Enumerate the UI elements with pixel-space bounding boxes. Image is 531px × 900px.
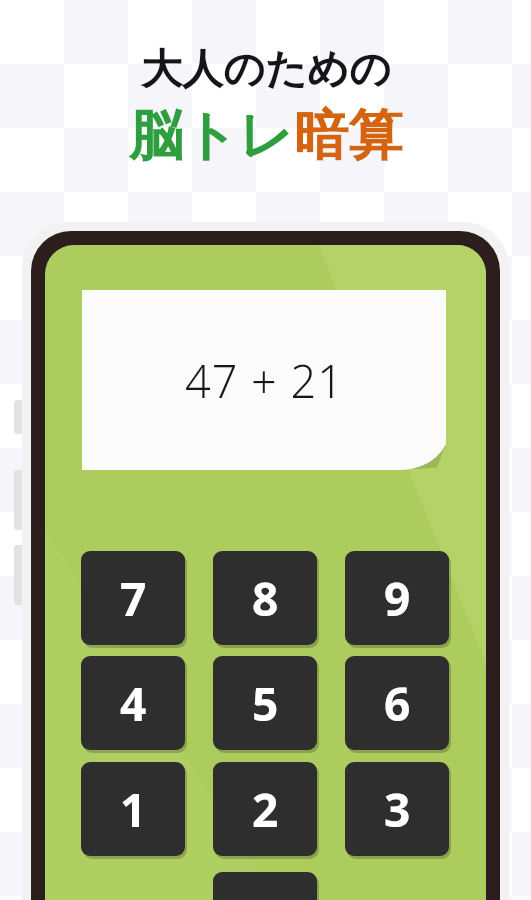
staticText: 2 bbox=[252, 778, 279, 841]
staticText: 1 bbox=[120, 778, 147, 841]
button[interactable]: 9 bbox=[345, 551, 449, 645]
staticText: 暗算 bbox=[294, 102, 402, 170]
staticText: 7 bbox=[120, 567, 147, 630]
staticText: 大人のための bbox=[141, 44, 391, 96]
staticText: 47 + 21 bbox=[185, 350, 344, 411]
staticText: 4 bbox=[120, 672, 147, 735]
button[interactable]: 8 bbox=[213, 551, 317, 645]
button[interactable]: 4 bbox=[81, 656, 185, 750]
staticText: 5 bbox=[252, 672, 279, 735]
button[interactable]: 3 bbox=[345, 762, 449, 856]
staticText: 3 bbox=[384, 778, 411, 841]
button[interactable]: 2 bbox=[213, 762, 317, 856]
button[interactable]: 5 bbox=[213, 656, 317, 750]
staticText: 9 bbox=[384, 567, 411, 630]
staticText: 8 bbox=[252, 567, 279, 630]
button[interactable]: 1 bbox=[81, 762, 185, 856]
button[interactable]: 6 bbox=[345, 656, 449, 750]
staticText: 6 bbox=[384, 672, 411, 735]
button[interactable]: 0 bbox=[213, 872, 317, 900]
staticText: 脳トレ bbox=[129, 102, 294, 170]
button[interactable]: 7 bbox=[81, 551, 185, 645]
